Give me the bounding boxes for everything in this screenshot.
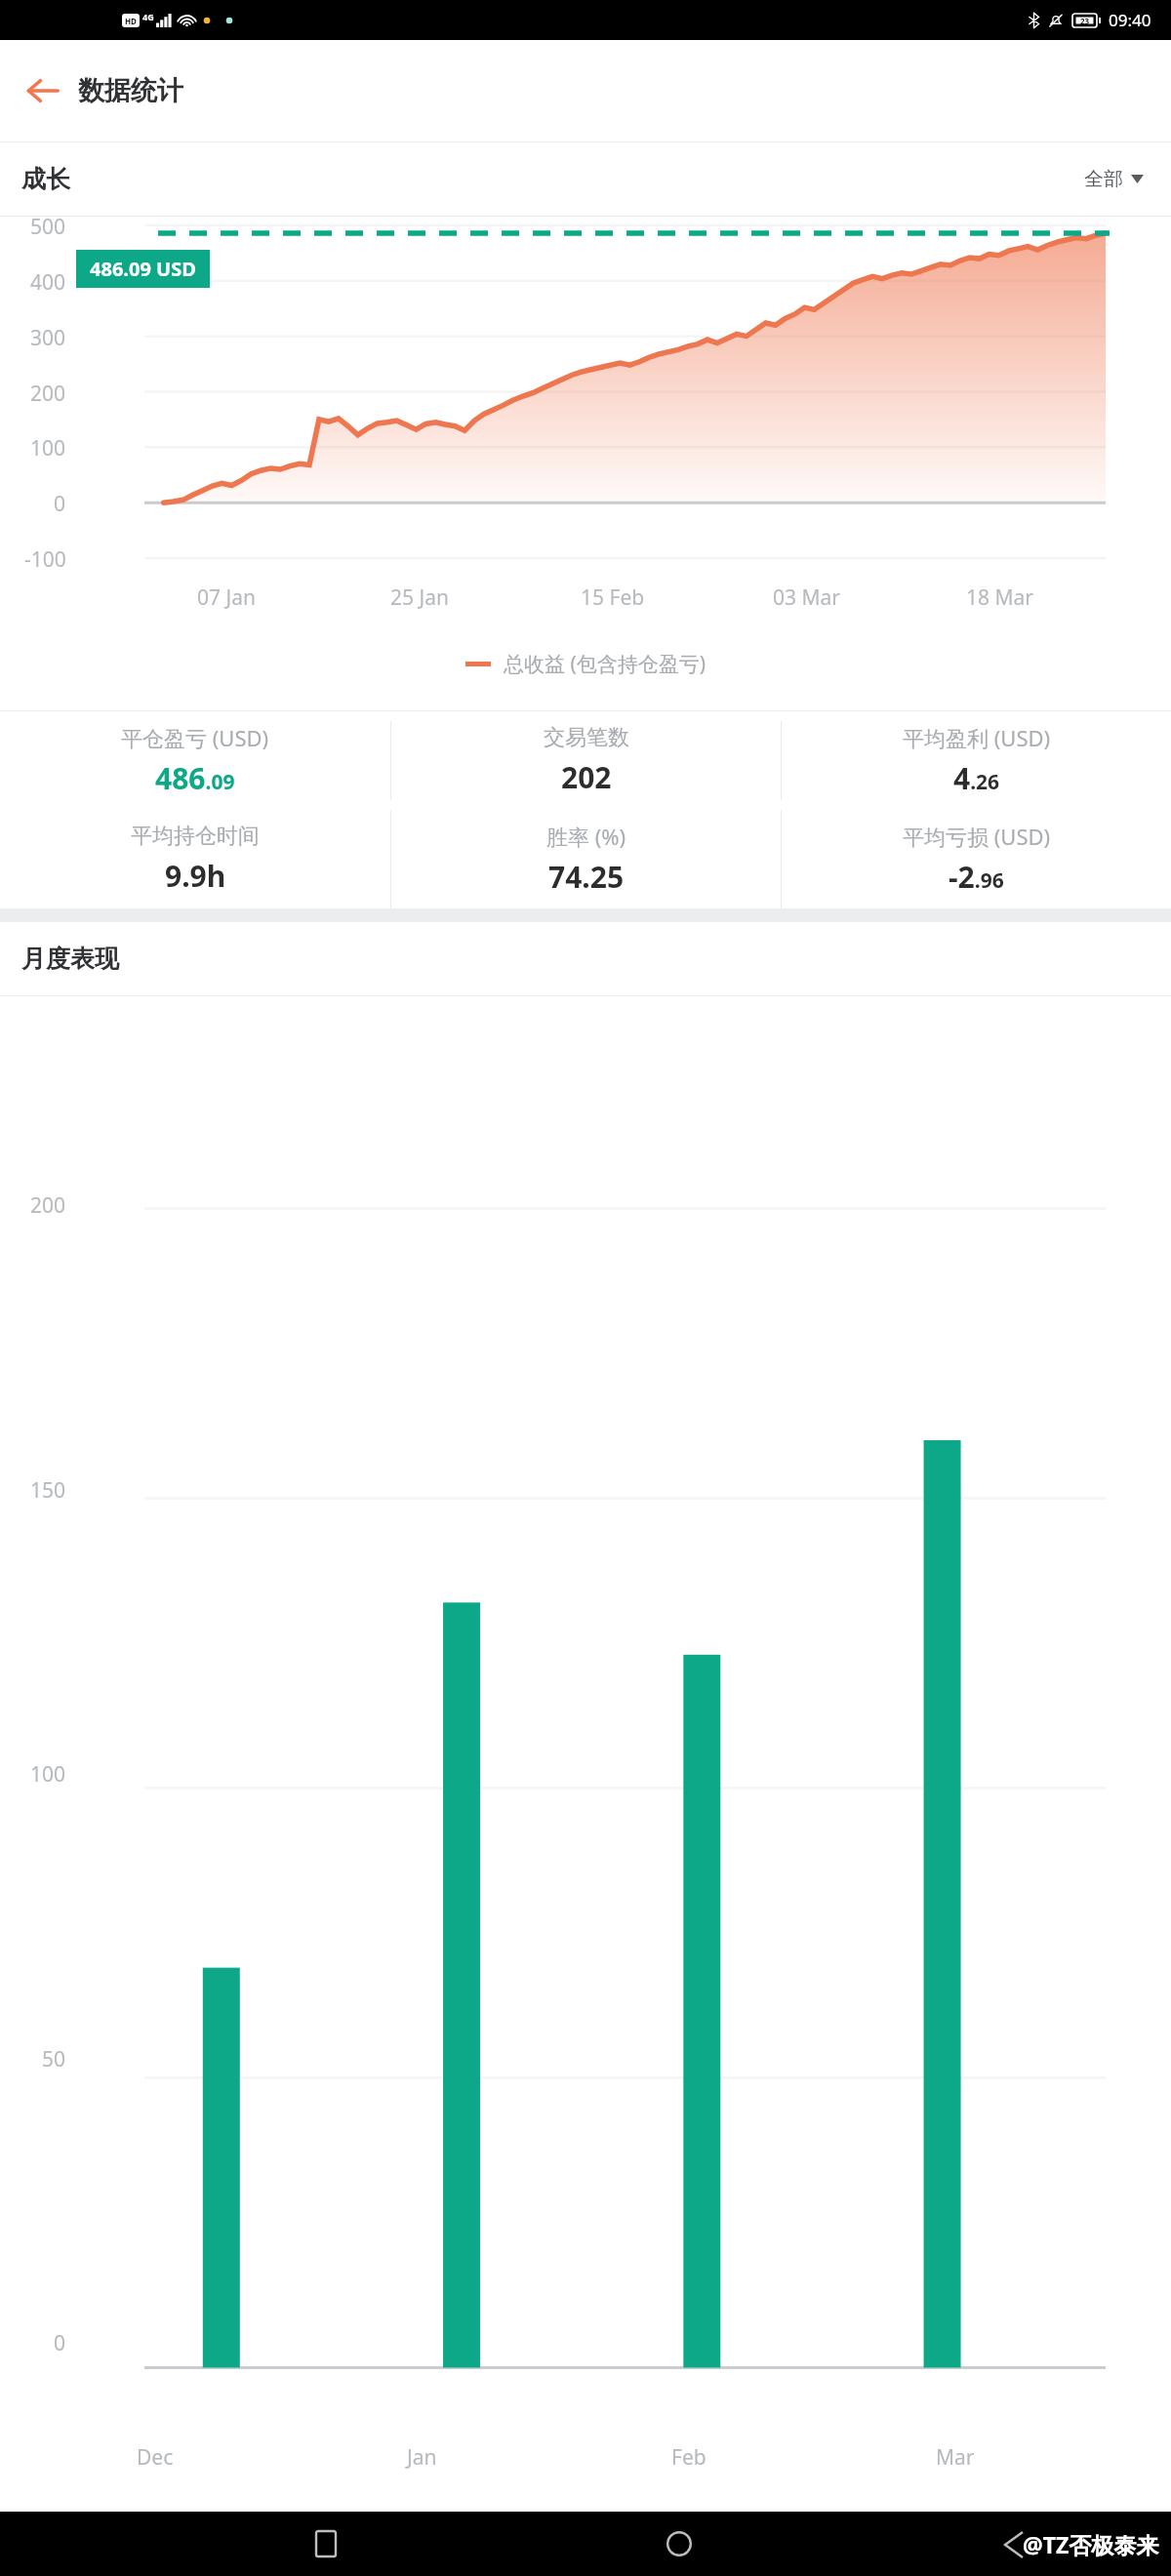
- staticText: 4.26: [953, 758, 1000, 798]
- staticText: 200: [30, 1191, 66, 1220]
- button[interactable]: Back: [1005, 2529, 1171, 2559]
- staticText: 07 Jan: [197, 584, 256, 612]
- staticText: 18 Mar: [966, 584, 1033, 612]
- staticText: 胜率 (%): [546, 822, 626, 851]
- staticText: 25 Jan: [390, 584, 449, 612]
- staticText: HD: [125, 16, 137, 26]
- staticText: @TZ否极泰来: [1023, 2529, 1159, 2559]
- staticText: 200: [30, 380, 66, 408]
- button[interactable]: Recents: [299, 2516, 353, 2571]
- staticText: -2.96: [949, 857, 1004, 897]
- button[interactable]: 全部: [1078, 161, 1150, 197]
- staticText: 平均盈利 (USD): [903, 723, 1051, 752]
- button[interactable]: Home: [652, 2516, 707, 2571]
- staticText: 100: [30, 1760, 66, 1789]
- staticText: 平仓盈亏 (USD): [121, 723, 269, 752]
- staticText: 486.09: [155, 758, 235, 798]
- staticText: Jan: [407, 2443, 437, 2472]
- staticText: -100: [24, 545, 66, 574]
- staticText: 486.09 USD: [90, 256, 196, 282]
- staticText: 15 Feb: [581, 584, 645, 612]
- staticText: 全部: [1084, 167, 1123, 191]
- staticText: 300: [30, 324, 66, 352]
- staticText: 月度表现: [21, 944, 119, 974]
- staticText: 03 Mar: [773, 584, 840, 612]
- staticText: 400: [30, 268, 66, 297]
- staticText: 0: [54, 2329, 66, 2357]
- staticText: 交易笔数: [544, 724, 629, 751]
- staticText: 50: [42, 2045, 66, 2073]
- staticText: Mar: [936, 2443, 975, 2472]
- staticText: 23: [1080, 16, 1090, 26]
- staticText: 74.25: [548, 857, 625, 897]
- staticText: Feb: [671, 2443, 707, 2472]
- button[interactable]: Back: [14, 61, 72, 120]
- staticText: 成长: [21, 164, 70, 194]
- staticText: 0: [54, 490, 66, 518]
- staticText: 500: [30, 213, 66, 241]
- staticText: 数据统计: [78, 74, 183, 107]
- staticText: 平均持仓时间: [131, 823, 260, 850]
- staticText: 202: [561, 757, 612, 797]
- staticText: 总收益 (包含持仓盈亏): [504, 650, 707, 678]
- staticText: 09:40: [1109, 9, 1151, 31]
- staticText: 4G: [142, 11, 154, 22]
- staticText: 平均亏损 (USD): [903, 822, 1051, 851]
- staticText: 9.9h: [165, 856, 226, 896]
- staticText: Dec: [137, 2443, 174, 2472]
- staticText: 150: [30, 1476, 66, 1505]
- staticText: 100: [30, 434, 66, 463]
